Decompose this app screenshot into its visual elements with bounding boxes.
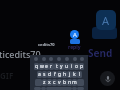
- button[interactable]: z: [42, 79, 47, 86]
- button[interactable]: Keyboard tool: [73, 57, 77, 61]
- button[interactable]: u: [64, 63, 69, 70]
- staticText: v: [58, 79, 61, 86]
- button[interactable]: c: [52, 79, 57, 86]
- button[interactable]: w: [39, 63, 44, 70]
- button[interactable]: e: [44, 63, 49, 70]
- button[interactable]: q: [34, 63, 39, 70]
- staticText: q: [35, 63, 39, 70]
- staticText: z: [43, 79, 46, 86]
- staticText: A: [73, 31, 77, 39]
- button[interactable]: s: [42, 71, 47, 78]
- staticText: u: [65, 63, 69, 70]
- staticText: o: [75, 63, 79, 70]
- staticText: a: [38, 71, 41, 78]
- button[interactable]: ticedits70: [0, 48, 41, 60]
- button[interactable]: r: [49, 63, 54, 70]
- button[interactable]: Keyboard tool: [49, 57, 53, 61]
- button[interactable]: v: [57, 79, 62, 86]
- staticText: l: [79, 71, 81, 78]
- button[interactable]: [46, 87, 72, 90]
- button[interactable]: y: [59, 63, 64, 70]
- staticText: c: [53, 79, 56, 86]
- button[interactable]: [35, 79, 42, 86]
- staticText: j: [69, 71, 71, 78]
- staticText: x: [48, 79, 51, 86]
- button[interactable]: o: [74, 63, 79, 70]
- staticText: f: [54, 71, 56, 78]
- button[interactable]: Keyboard tool: [57, 57, 61, 61]
- staticText: A: [102, 13, 110, 28]
- staticText: t: [56, 63, 58, 70]
- button[interactable]: reply: [68, 44, 81, 51]
- staticText: m: [72, 79, 77, 86]
- button[interactable]: Keyboard tool: [42, 57, 46, 61]
- button[interactable]: j: [67, 71, 72, 78]
- button[interactable]: Keyboard tool: [65, 57, 69, 61]
- button[interactable]: .: [72, 87, 77, 90]
- staticText: h: [63, 71, 67, 78]
- staticText: g: [58, 71, 62, 78]
- staticText: w: [40, 63, 44, 70]
- button[interactable]: l: [77, 71, 82, 78]
- button[interactable]: [77, 79, 84, 86]
- button[interactable]: ,: [41, 87, 46, 90]
- button[interactable]: b: [62, 79, 67, 86]
- button[interactable]: [70, 39, 80, 44]
- button[interactable]: Send: [88, 46, 113, 60]
- staticText: d: [48, 71, 52, 78]
- staticText: s: [43, 71, 46, 78]
- button[interactable]: d: [47, 71, 52, 78]
- button[interactable]: Microphone: [100, 71, 115, 86]
- staticText: y: [60, 63, 63, 70]
- button[interactable]: GIF: [0, 70, 14, 81]
- button[interactable]: Keyboard tool: [80, 57, 84, 61]
- button[interactable]: k: [72, 71, 77, 78]
- staticText: n: [68, 79, 72, 86]
- button[interactable]: Profile avatar: [70, 30, 79, 39]
- button[interactable]: x: [47, 79, 52, 86]
- button[interactable]: m: [72, 79, 77, 86]
- button[interactable]: Keyboard tool: [34, 57, 38, 61]
- staticText: i: [71, 63, 73, 70]
- button[interactable]: a: [37, 71, 42, 78]
- button[interactable]: cedits70: [38, 42, 55, 47]
- button[interactable]: i: [69, 63, 74, 70]
- button[interactable]: [34, 87, 41, 90]
- staticText: k: [73, 71, 76, 78]
- staticText: e: [45, 63, 48, 70]
- button[interactable]: h: [62, 71, 67, 78]
- button[interactable]: p: [79, 63, 84, 70]
- button[interactable]: g: [57, 71, 62, 78]
- button[interactable]: App icon: [96, 10, 116, 30]
- staticText: p: [80, 63, 84, 70]
- staticText: b: [63, 79, 67, 86]
- button[interactable]: f: [52, 71, 57, 78]
- button[interactable]: t: [54, 63, 59, 70]
- button[interactable]: [77, 87, 84, 90]
- staticText: r: [50, 63, 53, 70]
- button[interactable]: n: [67, 79, 72, 86]
